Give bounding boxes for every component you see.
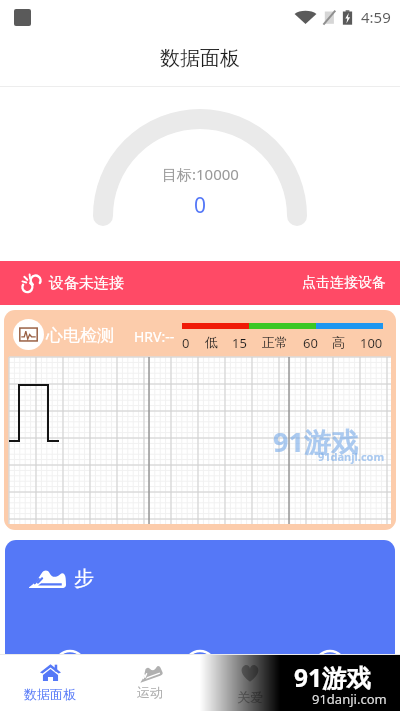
staticText: 91danji.com: [312, 690, 387, 708]
staticText: 我的: [337, 689, 363, 705]
staticText: 运动: [137, 684, 163, 700]
staticText: 高: [332, 334, 345, 350]
staticText: 数据面板: [24, 686, 76, 702]
staticText: 15: [232, 334, 247, 352]
button[interactable]: 步: [5, 540, 395, 700]
staticText: 91游戏: [273, 423, 358, 460]
staticText: HRV:--: [134, 327, 175, 346]
staticText: 91danji.com: [318, 449, 385, 464]
staticText: 100: [360, 334, 383, 352]
staticText: 4:59: [361, 7, 391, 27]
staticText: 0: [182, 334, 190, 352]
staticText: 60: [303, 334, 318, 352]
staticText: 心电检测: [46, 325, 114, 346]
staticText: 点击连接设备: [302, 274, 386, 292]
staticText: 低: [205, 334, 218, 350]
staticText: 数据面板: [160, 46, 240, 71]
button[interactable]: 我的: [300, 655, 400, 711]
staticText: 目标:10000: [162, 164, 239, 184]
button[interactable]: 心电检测: [4, 310, 396, 530]
button[interactable]: 运动: [100, 655, 200, 711]
staticText: 91游戏: [294, 661, 372, 694]
staticText: 关爱: [237, 689, 263, 705]
staticText: 正常: [262, 334, 288, 350]
button[interactable]: 关爱: [200, 655, 300, 711]
button[interactable]: 设备未连接: [0, 261, 400, 305]
staticText: 设备未连接: [49, 274, 124, 293]
staticText: 步: [74, 566, 94, 591]
staticText: 0: [194, 191, 207, 220]
button[interactable]: 数据面板: [0, 655, 100, 711]
